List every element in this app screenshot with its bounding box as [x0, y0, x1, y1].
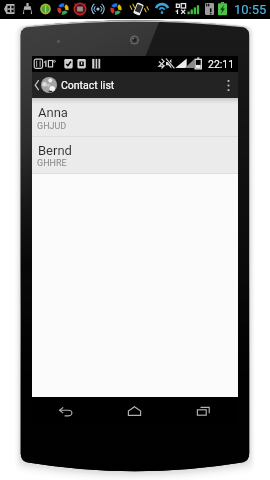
staticText: Contact list [61, 79, 115, 91]
staticText: Anna [38, 105, 68, 120]
button[interactable]: Back [32, 397, 100, 425]
button[interactable]: Anna [32, 98, 238, 137]
staticText: 22:11 [208, 58, 235, 70]
staticText: GHHRE [37, 158, 67, 169]
button[interactable]: Navigate up [32, 72, 57, 99]
staticText: 10:55 [234, 2, 267, 17]
button[interactable]: More options [219, 72, 238, 99]
button[interactable]: Bernd [32, 137, 238, 174]
staticText: GHJUD [37, 121, 67, 132]
staticText: Bernd [38, 143, 72, 158]
button[interactable]: Home [100, 397, 169, 425]
button[interactable]: Recent apps [169, 397, 238, 425]
